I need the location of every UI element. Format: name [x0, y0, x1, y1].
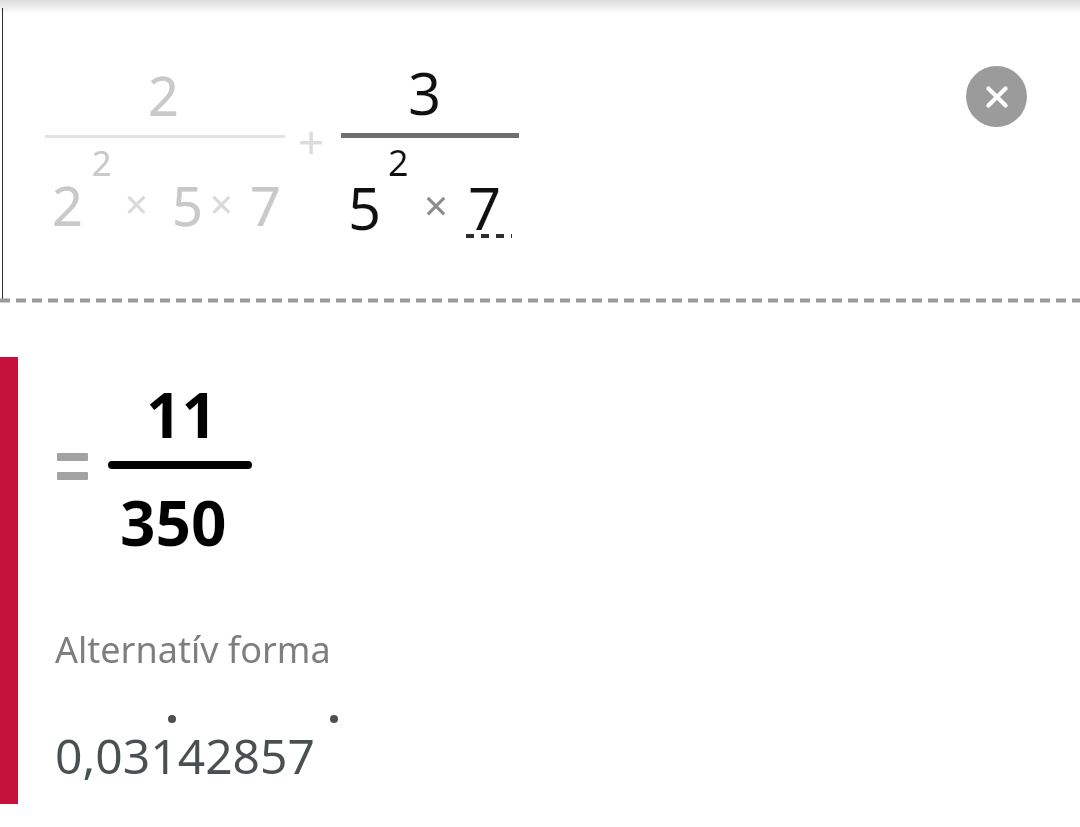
staticText: +: [298, 110, 325, 173]
staticText: 2: [52, 168, 83, 242]
staticText: Alternatív forma: [55, 625, 331, 674]
staticText: 3: [408, 53, 442, 132]
staticText: ×: [424, 176, 449, 233]
staticText: ×: [125, 176, 148, 230]
staticText: 11: [146, 372, 217, 456]
staticText: 2: [92, 140, 112, 186]
staticText: 7: [250, 168, 281, 242]
staticText: 350: [120, 480, 227, 564]
staticText: 5: [172, 168, 203, 242]
staticText: 7: [468, 168, 502, 247]
staticText: 0,03142857: [55, 723, 315, 788]
button[interactable]: Close: [966, 66, 1027, 127]
staticText: 5: [348, 168, 382, 247]
staticText: ×: [210, 176, 233, 230]
staticText: 2: [388, 138, 409, 187]
staticText: 2: [148, 58, 179, 132]
